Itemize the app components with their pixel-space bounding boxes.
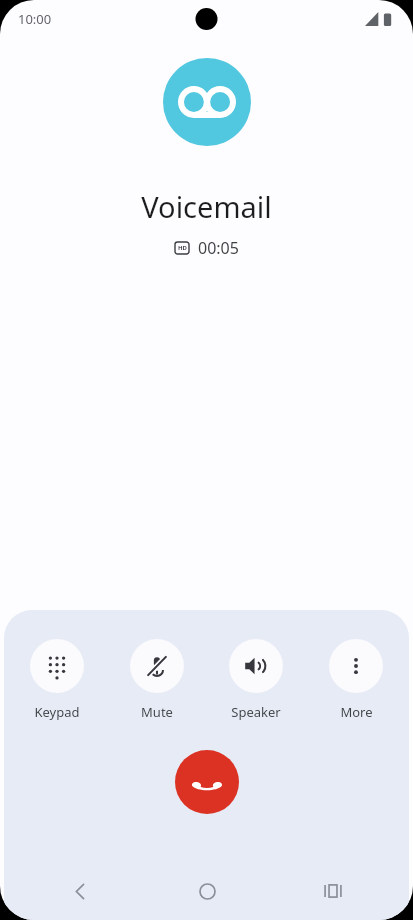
other: Keypad: [46, 655, 68, 677]
staticText: Keypad: [34, 703, 80, 721]
other: More options: [345, 655, 367, 677]
other: Mute: [145, 654, 169, 678]
other: Speaker: [244, 654, 268, 678]
button[interactable]: Keypad: [18, 639, 96, 721]
staticText: Voicemail: [0, 187, 413, 226]
button[interactable]: More options: [317, 639, 395, 721]
staticText: 00:05: [198, 237, 239, 259]
button[interactable]: Mute: [118, 639, 196, 721]
staticText: More: [340, 703, 373, 721]
staticText: 10:00: [18, 10, 52, 28]
staticText: Speaker: [231, 703, 281, 721]
button[interactable]: End call: [175, 750, 239, 814]
button[interactable]: Home: [185, 869, 229, 913]
staticText: HD: [178, 244, 187, 252]
button[interactable]: Recent apps: [311, 869, 355, 913]
button[interactable]: Back: [58, 869, 102, 913]
staticText: Mute: [141, 703, 173, 721]
button[interactable]: Speaker: [217, 639, 295, 721]
